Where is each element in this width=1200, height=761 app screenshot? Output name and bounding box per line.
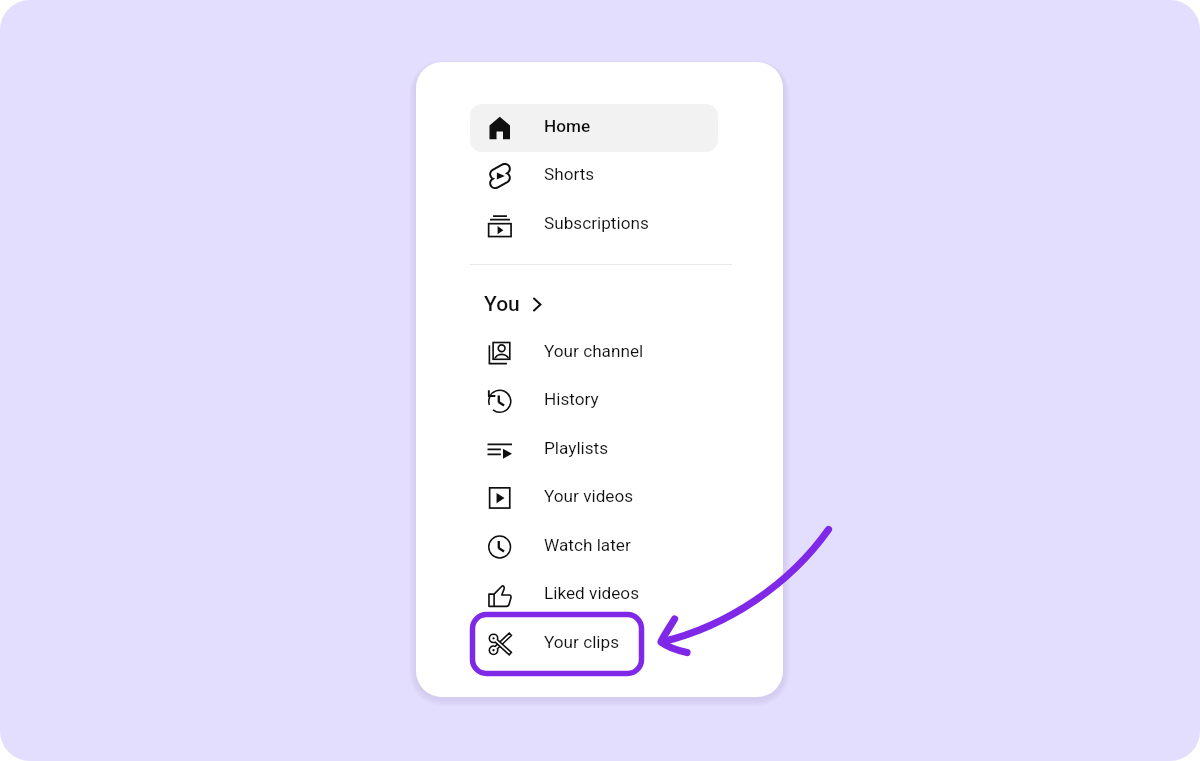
- staticText: Your channel: [544, 341, 644, 361]
- staticText: You: [484, 292, 520, 317]
- button[interactable]: History: [470, 377, 718, 425]
- button[interactable]: Your videos: [470, 474, 718, 522]
- button[interactable]: Your channel: [470, 329, 718, 377]
- staticText: Playlists: [544, 438, 609, 458]
- button[interactable]: Shorts: [470, 152, 718, 200]
- staticText: Watch later: [544, 535, 631, 555]
- button[interactable]: Liked videos: [470, 571, 718, 619]
- button[interactable]: Home: [470, 104, 718, 152]
- button[interactable]: Subscriptions: [470, 201, 718, 249]
- staticText: Your videos: [544, 486, 634, 506]
- staticText: Liked videos: [544, 583, 640, 603]
- staticText: Shorts: [544, 164, 595, 184]
- button[interactable]: Watch later: [470, 523, 718, 571]
- staticText: Home: [544, 116, 591, 136]
- button[interactable]: Your clips: [470, 620, 718, 668]
- staticText: Subscriptions: [544, 213, 649, 233]
- button[interactable]: You: [484, 291, 541, 317]
- staticText: History: [544, 389, 599, 409]
- staticText: Your clips: [544, 632, 620, 652]
- button[interactable]: Playlists: [470, 426, 718, 474]
